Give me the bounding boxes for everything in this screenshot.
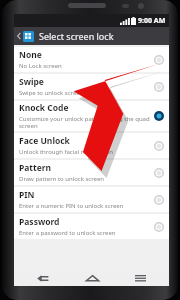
staticText: Enter a numeric PIN to unlock screen	[19, 202, 124, 210]
staticText: Select screen lock	[39, 30, 114, 42]
button[interactable]: Face Unlock	[14, 133, 169, 158]
button[interactable]: Pattern	[14, 160, 169, 185]
button[interactable]: Knock Code	[14, 101, 169, 131]
staticText: Swipe	[19, 76, 44, 88]
staticText: Knock Code	[19, 102, 69, 114]
staticText: Draw pattern to unlock screen	[19, 175, 105, 183]
button[interactable]: Recent apps	[120, 270, 160, 286]
button[interactable]: Swipe	[14, 74, 169, 99]
staticText: Password	[19, 216, 60, 228]
staticText: No Lock screen	[19, 62, 62, 70]
staticText: Pattern	[19, 162, 52, 174]
button[interactable]: Navigate up	[14, 27, 23, 45]
staticText: Enter a password to unlock screen	[19, 229, 116, 237]
staticText: 9:00 AM	[138, 16, 166, 26]
staticText: PIN	[19, 189, 35, 201]
button[interactable]: PIN	[14, 187, 169, 212]
button[interactable]: Password	[14, 214, 169, 239]
staticText: Face Unlock	[19, 135, 70, 147]
button[interactable]: None	[14, 47, 169, 72]
staticText: None	[19, 49, 42, 61]
button[interactable]: Home	[72, 270, 112, 286]
button[interactable]: Back	[23, 270, 63, 286]
staticText: Unlock through facial recognition	[19, 148, 114, 156]
staticText: Customize your unlock pattern using the …	[19, 115, 150, 130]
staticText: Swipe to unlock screen	[19, 89, 84, 97]
